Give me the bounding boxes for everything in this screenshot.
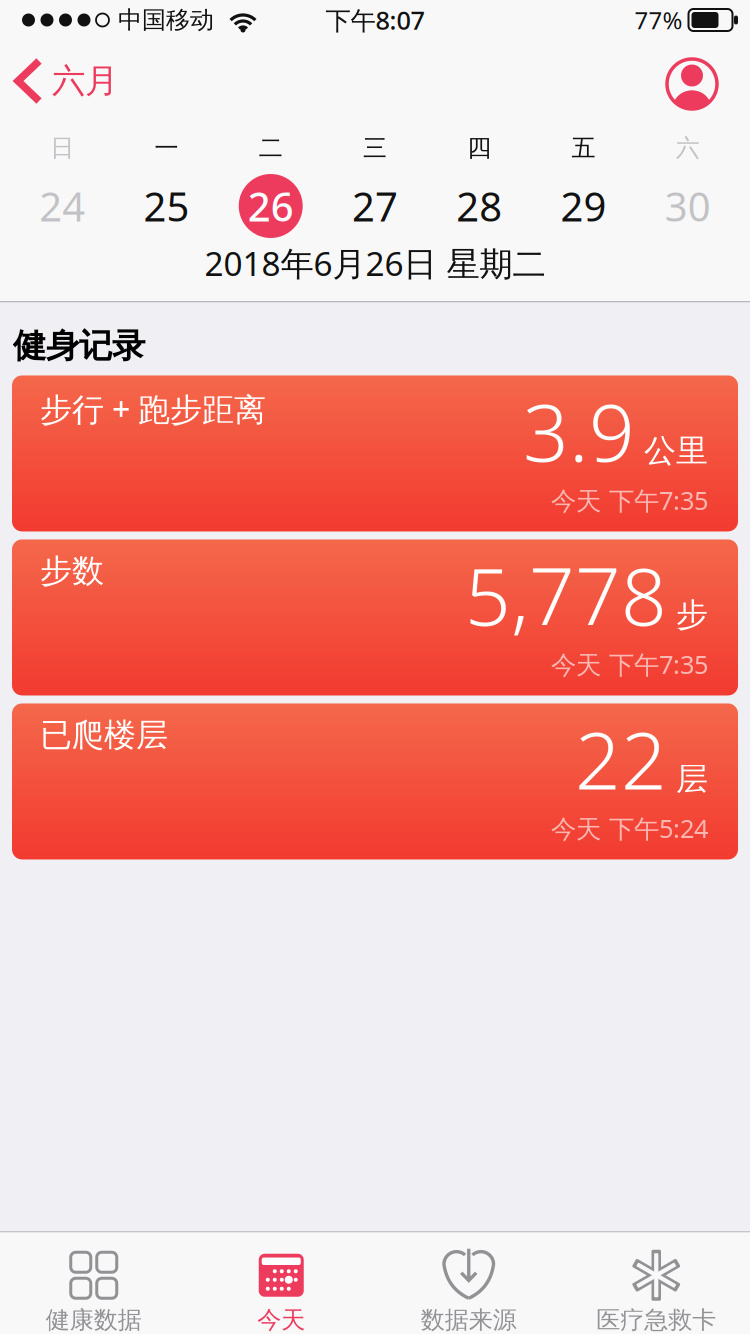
staticText: 77% (634, 4, 682, 36)
button[interactable]: 24 (10, 173, 114, 239)
button[interactable]: 已爬楼层 (12, 703, 738, 859)
staticText: 数据来源 (421, 1305, 517, 1334)
staticText: 今天 下午7:35 (551, 483, 708, 517)
staticText: 中国移动 (118, 5, 214, 35)
staticText: 层 (676, 759, 708, 799)
staticText: 26 (248, 179, 294, 232)
staticText: 今天 下午5:24 (551, 811, 708, 845)
button[interactable]: 步行 + 跑步距离 (12, 375, 738, 531)
button[interactable]: 个人资料 (667, 56, 717, 106)
button[interactable]: 医疗急救卡 (562, 1247, 750, 1334)
staticText: 27 (352, 179, 398, 232)
staticText: 5,778 (465, 541, 667, 648)
staticText: 2018年6月26日 星期二 (204, 241, 545, 285)
staticText: 一 (154, 133, 178, 163)
staticText: 三 (363, 133, 387, 163)
staticText: 今天 下午7:35 (551, 647, 708, 681)
staticText: 22 (575, 705, 667, 812)
button[interactable]: 健康数据 (0, 1247, 187, 1334)
staticText: 六 (676, 133, 700, 163)
button[interactable]: 28 (427, 173, 531, 239)
button[interactable]: 数据来源 (375, 1247, 562, 1334)
staticText: 25 (143, 179, 189, 232)
staticText: 公里 (644, 431, 708, 471)
staticText: 健康数据 (46, 1305, 142, 1334)
button[interactable]: 29 (531, 173, 636, 239)
staticText: 健身记录 (13, 325, 145, 366)
staticText: 3.9 (523, 377, 635, 484)
staticText: 六月 (52, 60, 118, 101)
staticText: 四 (467, 133, 491, 163)
button[interactable]: 步数 (12, 539, 738, 695)
staticText: 日 (50, 133, 74, 163)
button[interactable]: 26 (219, 173, 323, 239)
staticText: 二 (259, 133, 283, 163)
button[interactable]: 25 (114, 173, 219, 239)
staticText: 医疗急救卡 (596, 1305, 716, 1334)
button[interactable]: 今天 (187, 1247, 375, 1334)
button[interactable]: 27 (323, 173, 427, 239)
staticText: 今天 (257, 1305, 305, 1334)
staticText: 步行 + 跑步距离 (40, 387, 266, 430)
staticText: 30 (665, 179, 711, 232)
staticText: 29 (561, 179, 607, 232)
button[interactable]: 30 (636, 173, 740, 239)
staticText: 五 (572, 133, 596, 163)
staticText: 步数 (40, 551, 104, 591)
staticText: 步 (676, 595, 708, 635)
staticText: 28 (456, 179, 502, 232)
staticText: 下午8:07 (325, 3, 424, 37)
staticText: 24 (39, 179, 85, 232)
staticText: 已爬楼层 (40, 715, 168, 755)
button[interactable]: 返回六月 (18, 60, 118, 101)
